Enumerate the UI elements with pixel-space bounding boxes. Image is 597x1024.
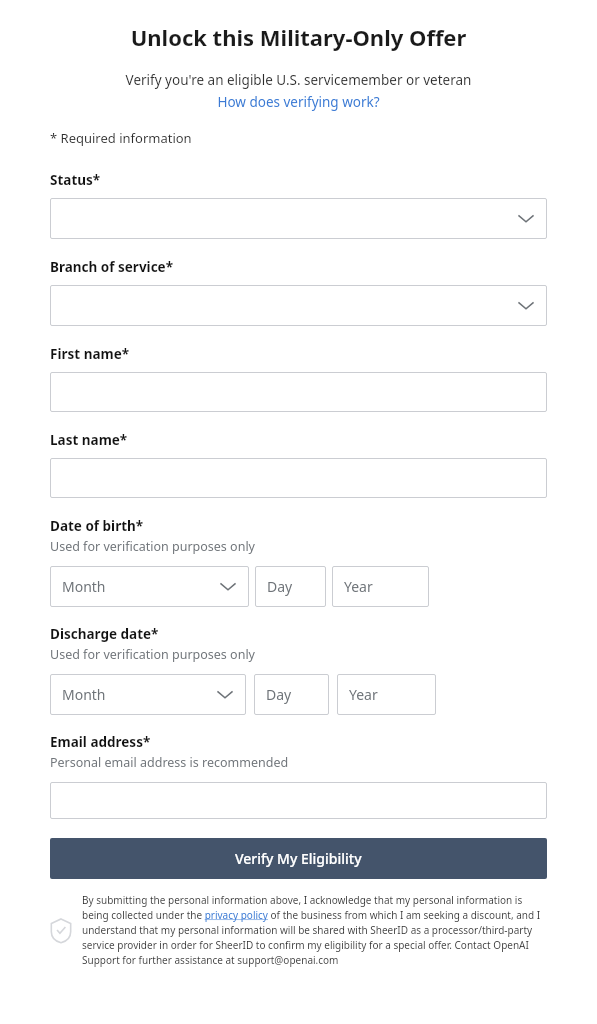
button[interactable]: Year [337, 674, 436, 715]
staticText: By submitting the personal information a… [82, 893, 547, 967]
button[interactable]: Email address input [50, 782, 547, 819]
staticText: Unlock this Military-Only Offer [0, 22, 597, 52]
button[interactable]: First name input [50, 372, 547, 412]
button[interactable]: Month [50, 674, 246, 715]
staticText: Month [62, 685, 106, 704]
staticText: Used for verification purposes only [50, 538, 255, 555]
staticText: Year [344, 577, 373, 596]
button[interactable]: Day [255, 566, 326, 607]
button[interactable]: Month [50, 566, 249, 607]
button[interactable]: Verify My Eligibility [50, 838, 547, 879]
staticText: Status* [50, 171, 101, 189]
staticText: Personal email address is recommended [50, 754, 289, 771]
staticText: First name* [50, 345, 130, 363]
staticText: Month [62, 577, 106, 596]
staticText: Email address* [50, 733, 151, 751]
staticText: Discharge date* [50, 625, 159, 643]
staticText: Date of birth* [50, 517, 144, 535]
staticText: Used for verification purposes only [50, 646, 255, 663]
staticText: Last name* [50, 431, 128, 449]
button[interactable]: Status dropdown [50, 198, 547, 239]
button[interactable]: Day [254, 674, 329, 715]
staticText: * Required information [50, 129, 192, 147]
staticText: Verify My Eligibility [235, 849, 362, 868]
staticText: Verify you're an eligible U.S. serviceme… [0, 71, 597, 89]
button[interactable]: Last name input [50, 458, 547, 498]
staticText: Day [266, 685, 292, 704]
button[interactable]: Year [332, 566, 429, 607]
staticText: Day [267, 577, 293, 596]
staticText: Year [349, 685, 378, 704]
staticText: Branch of service* [50, 258, 173, 276]
button[interactable]: How does verifying work? [213, 92, 384, 112]
button[interactable]: Branch of service dropdown [50, 285, 547, 326]
